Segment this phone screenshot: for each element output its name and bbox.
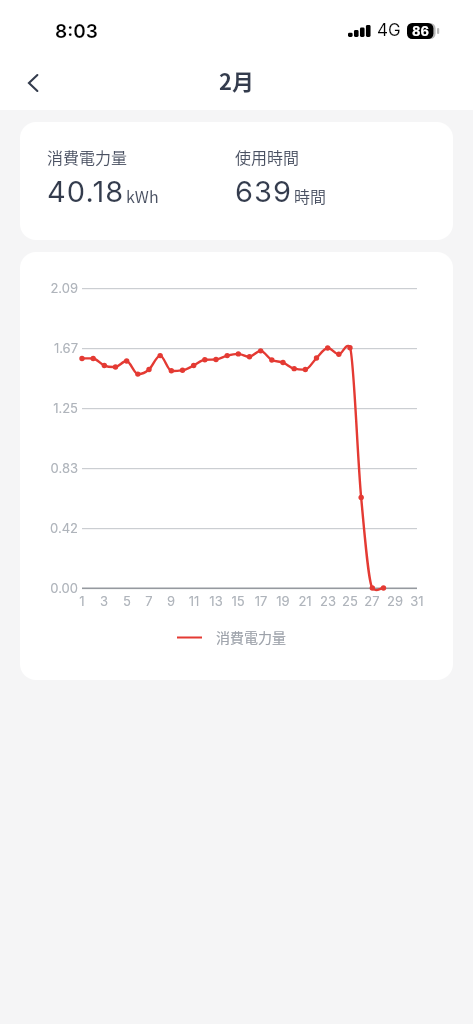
staticText: 29 [383,593,407,609]
staticText: 11 [182,593,206,609]
staticText: 19 [271,593,295,609]
staticText: 23 [316,593,340,609]
staticText: 消費電力量 [47,145,128,168]
staticText: 2.09 [20,280,78,296]
staticText: 4G [377,20,401,41]
staticText: 2月 [219,64,254,96]
staticText: 1 [70,593,94,609]
staticText: 1.25 [20,400,78,416]
staticText: 639 [235,174,293,209]
staticText: 8:03 [55,20,98,43]
staticText: 0.42 [20,520,78,536]
staticText: 時間 [294,184,327,207]
staticText: 15 [226,593,250,609]
staticText: 3 [92,593,116,609]
staticText: 0.00 [20,580,78,596]
staticText: 0.83 [20,460,78,476]
staticText: 31 [405,593,429,609]
staticText: 21 [293,593,317,609]
staticText: 7 [137,593,161,609]
staticText: 17 [249,593,273,609]
staticText: 27 [360,593,384,609]
staticText: 13 [204,593,228,609]
staticText: 25 [338,593,362,609]
staticText: 使用時間 [235,145,300,168]
staticText: 40.18 [47,174,125,209]
staticText: 86 [412,23,429,39]
staticText: 消費電力量 [216,627,286,647]
staticText: 9 [159,593,183,609]
staticText: kWh [126,184,159,207]
staticText: 1.67 [20,340,78,356]
staticText: 5 [115,593,139,609]
button[interactable]: Back [7,56,61,110]
